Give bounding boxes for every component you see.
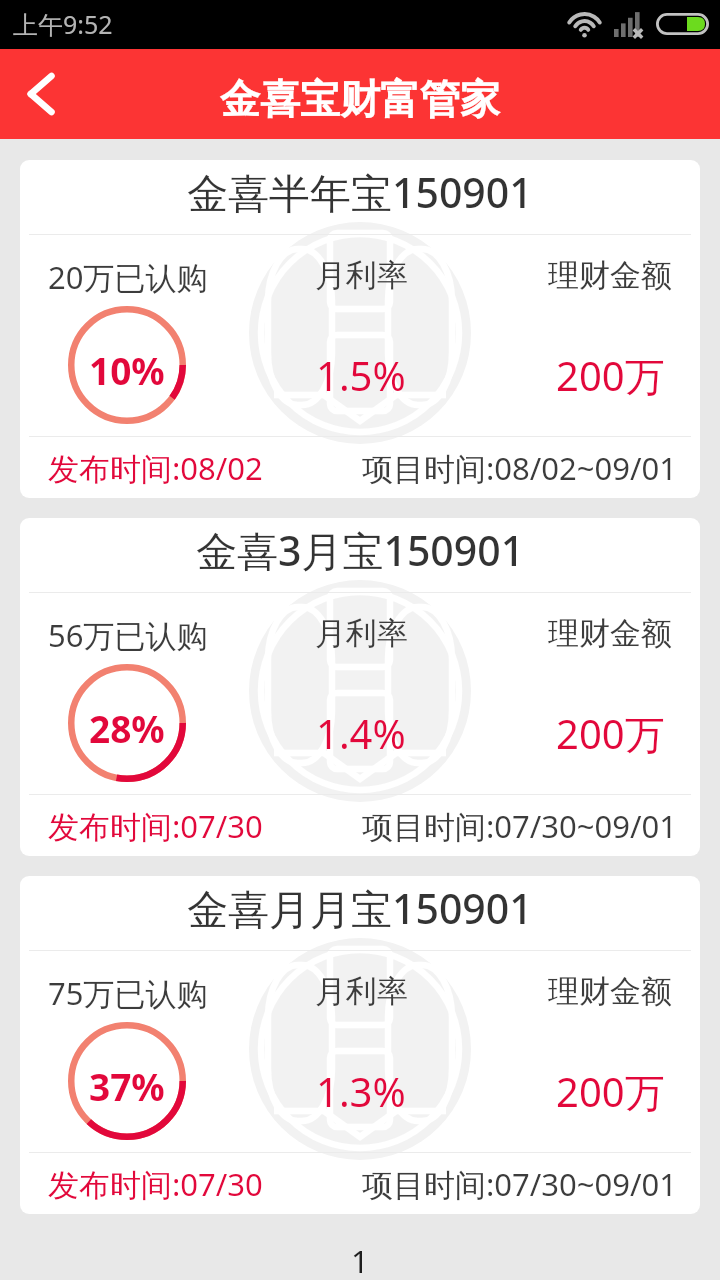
staticText: 项目时间:07/30~09/01 [362, 1163, 677, 1205]
staticText: 56万已认购 [48, 614, 208, 656]
staticText: 20万已认购 [48, 256, 208, 298]
staticText: 金喜月月宝150901 [187, 880, 533, 936]
staticText: 金喜宝财富管家 [220, 74, 500, 124]
staticText: 月利率 [315, 614, 408, 653]
staticText: 1.5% [316, 348, 406, 402]
staticText: 项目时间:08/02~09/01 [362, 447, 677, 489]
staticText: 1 [351, 1240, 369, 1276]
staticText: 200万 [556, 348, 665, 403]
staticText: 1.4% [316, 706, 406, 760]
staticText: 项目时间:07/30~09/01 [362, 805, 677, 847]
staticText: 理财金额 [548, 256, 672, 295]
staticText: 理财金额 [548, 614, 672, 653]
staticText: 37% [89, 1061, 165, 1111]
staticText: 月利率 [315, 256, 408, 295]
staticText: 200万 [556, 1064, 665, 1119]
staticText: 金喜半年宝150901 [187, 164, 533, 220]
staticText: 发布时间:07/30 [48, 1163, 263, 1205]
button[interactable]: 返回 [0, 49, 88, 139]
button[interactable]: 1 [337, 1240, 383, 1276]
staticText: 发布时间:08/02 [48, 447, 263, 489]
staticText: 金喜3月宝150901 [196, 522, 525, 578]
staticText: 10% [89, 345, 165, 395]
button[interactable]: 金喜半年宝150901 [20, 160, 700, 498]
button[interactable]: 金喜3月宝150901 [20, 518, 700, 856]
staticText: 1.3% [316, 1064, 406, 1118]
staticText: 发布时间:07/30 [48, 805, 263, 847]
staticText: 200万 [556, 706, 665, 761]
staticText: 28% [89, 703, 165, 753]
staticText: 月利率 [315, 972, 408, 1011]
staticText: 理财金额 [548, 972, 672, 1011]
staticText: 上午9:52 [13, 7, 113, 41]
staticText: 75万已认购 [48, 972, 208, 1014]
button[interactable]: 金喜月月宝150901 [20, 876, 700, 1214]
